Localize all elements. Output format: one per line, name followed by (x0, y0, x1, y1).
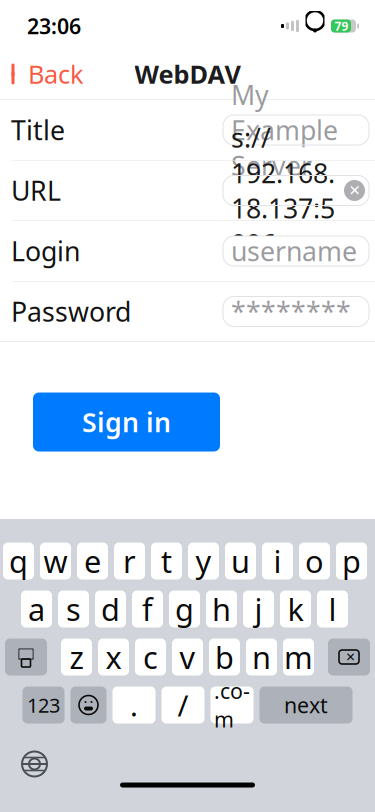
button[interactable]: a (21, 590, 52, 627)
staticText: e (84, 541, 101, 581)
staticText: i (273, 541, 281, 581)
staticText: y (195, 541, 211, 581)
staticText: 23:06 (27, 12, 81, 40)
button[interactable]: z (61, 638, 92, 675)
button[interactable]: Emoji (70, 686, 106, 723)
button[interactable]: l (317, 590, 348, 627)
staticText: x (105, 637, 121, 677)
button[interactable]: o (299, 542, 330, 579)
staticText: f (142, 589, 153, 629)
staticText: / (177, 685, 188, 724)
button[interactable]: ******** (223, 281, 369, 341)
button[interactable]: f (132, 590, 163, 627)
staticText: p (342, 541, 361, 581)
button[interactable]: r (114, 542, 145, 579)
staticText: g (175, 589, 194, 629)
button[interactable]: next (259, 686, 352, 723)
button[interactable]: Delete (328, 638, 370, 675)
staticText: Back (28, 57, 84, 91)
button[interactable]: .com (210, 686, 253, 723)
button[interactable]: username (223, 221, 369, 281)
staticText: c (143, 637, 158, 677)
staticText: k (287, 589, 303, 629)
button[interactable]: s (58, 590, 89, 627)
staticText: username (231, 233, 357, 269)
button[interactable]: y (188, 542, 219, 579)
staticText: 123 (27, 692, 60, 718)
staticText: .com (214, 677, 250, 733)
staticText: Title (11, 112, 65, 148)
staticText: h (212, 589, 231, 629)
staticText: WebDAV (134, 57, 240, 91)
staticText: My Example Server (231, 77, 338, 183)
staticText: m (284, 637, 313, 677)
staticText: . (130, 685, 138, 724)
button[interactable]: u (225, 542, 256, 579)
staticText: z (69, 637, 83, 677)
staticText: ******** (231, 294, 351, 329)
button[interactable]: / (161, 686, 204, 723)
staticText: v (179, 637, 195, 677)
button[interactable]: w (40, 542, 71, 579)
staticText: l (328, 589, 336, 629)
staticText: URL (11, 173, 61, 208)
staticText: a (28, 589, 45, 629)
button[interactable]: 123 (22, 686, 64, 723)
staticText: w (43, 541, 67, 581)
button[interactable]: n (246, 638, 277, 675)
staticText: b (215, 637, 234, 677)
staticText: t (161, 541, 172, 581)
button[interactable]: Switch keyboard (13, 742, 56, 785)
staticText: q (9, 541, 28, 581)
button[interactable]: e (77, 542, 108, 579)
button[interactable]: v (172, 638, 203, 675)
button[interactable]: q (3, 542, 34, 579)
staticText: Password (11, 294, 131, 329)
staticText: n (252, 637, 271, 677)
button[interactable]: Back (0, 49, 84, 99)
button[interactable]: g (169, 590, 200, 627)
button[interactable]: j (243, 590, 274, 627)
staticText: ✕ (348, 182, 360, 199)
button[interactable]: . (112, 686, 155, 723)
button[interactable]: x (98, 638, 129, 675)
button[interactable]: Shift (5, 638, 47, 675)
button[interactable]: k (280, 590, 311, 627)
button[interactable]: s://192.168.18.137:5006 (223, 160, 369, 220)
staticText: u (231, 541, 250, 581)
button[interactable]: h (206, 590, 237, 627)
button[interactable]: c (135, 638, 166, 675)
staticText: j (254, 589, 262, 629)
button[interactable]: Sign in (33, 392, 220, 451)
staticText: s (66, 589, 81, 629)
button[interactable]: My Example Server (223, 100, 369, 160)
button[interactable]: p (336, 542, 367, 579)
button[interactable]: m (283, 638, 314, 675)
staticText: Login (11, 233, 80, 269)
staticText: r (123, 541, 136, 581)
staticText: 79 (334, 18, 348, 34)
staticText: Sign in (82, 404, 171, 440)
staticText: o (305, 541, 324, 581)
button[interactable]: t (151, 542, 182, 579)
staticText: d (101, 589, 120, 629)
staticText: next (284, 691, 328, 719)
button[interactable]: d (95, 590, 126, 627)
staticText: s://192.168.18.137:5006 (231, 120, 335, 261)
staticText: ✕ (345, 650, 355, 664)
button[interactable]: b (209, 638, 240, 675)
button[interactable]: i (262, 542, 293, 579)
